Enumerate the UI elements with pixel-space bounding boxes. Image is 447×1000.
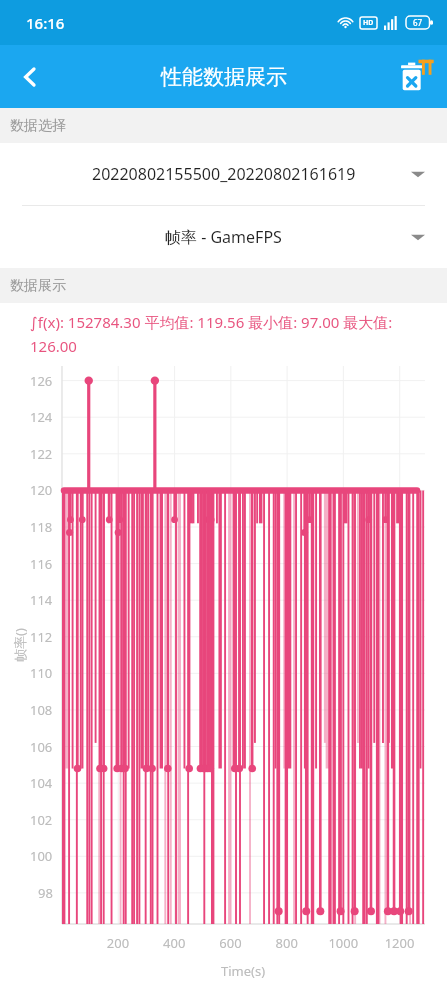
- staticText: 20220802155500_20220802161619: [92, 163, 356, 185]
- staticText: HD: [363, 18, 374, 28]
- staticText: 数据选择: [10, 117, 66, 135]
- staticText: 67: [413, 17, 423, 28]
- staticText: 16:16: [26, 13, 65, 33]
- button[interactable]: Clear data: [391, 52, 441, 102]
- staticText: 性能数据展示: [161, 64, 287, 90]
- staticText: 数据展示: [10, 277, 66, 295]
- staticText: 帧率 - GameFPS: [165, 226, 282, 248]
- button[interactable]: Back: [6, 53, 54, 101]
- staticText: ∫f(x): 152784.30 平均值: 119.56 最小值: 97.00 …: [30, 312, 431, 356]
- button[interactable]: 帧率 - GameFPS: [0, 206, 447, 268]
- button[interactable]: 20220802155500_20220802161619: [0, 143, 447, 205]
